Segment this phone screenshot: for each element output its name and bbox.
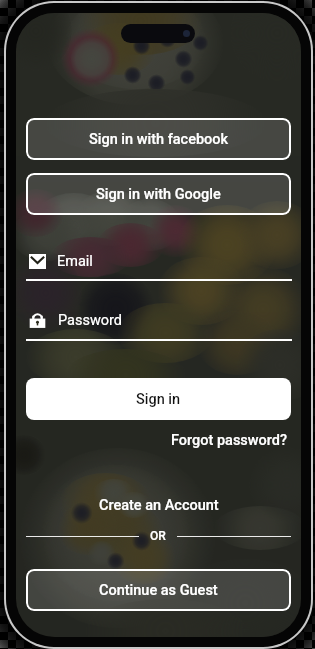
button[interactable]: Create an Account — [95, 494, 223, 517]
button[interactable]: Continue as Guest — [26, 569, 291, 611]
staticText: Create an Account — [99, 497, 219, 514]
staticText: Forgot password? — [171, 432, 288, 449]
button[interactable]: Sign in with facebook — [26, 118, 291, 160]
button[interactable]: Forgot password? — [169, 429, 290, 452]
staticText: Sign in with Google — [96, 186, 221, 203]
button[interactable]: Sign in with Google — [26, 173, 291, 215]
button[interactable]: Email — [29, 247, 293, 275]
staticText: Sign in with facebook — [89, 131, 229, 148]
staticText: Continue as Guest — [99, 582, 218, 599]
button[interactable]: Password — [29, 306, 293, 334]
staticText: Sign in — [136, 391, 181, 408]
button[interactable]: Sign in — [26, 378, 291, 420]
staticText: Password — [58, 312, 123, 329]
staticText: OR — [150, 529, 166, 543]
staticText: Email — [57, 253, 93, 270]
